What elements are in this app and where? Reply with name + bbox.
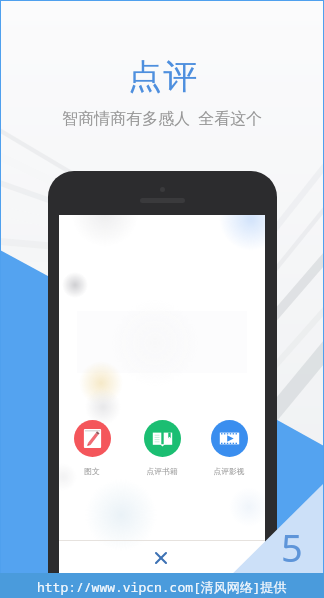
staticText: http://www.vipcn.com[清风网络]提供: [37, 578, 287, 596]
staticText: 智商情商有多感人 全看这个: [62, 107, 263, 129]
staticText: 图文: [62, 466, 122, 476]
button[interactable]: 点评书籍: [132, 420, 192, 476]
staticText: 5: [281, 521, 303, 573]
staticText: 点评书籍: [132, 466, 192, 476]
button[interactable]: Close: [150, 547, 172, 569]
button[interactable]: 点评影视: [199, 420, 259, 476]
button[interactable]: 图文: [62, 420, 122, 476]
staticText: 点评: [127, 55, 198, 98]
staticText: 点评影视: [199, 466, 259, 476]
